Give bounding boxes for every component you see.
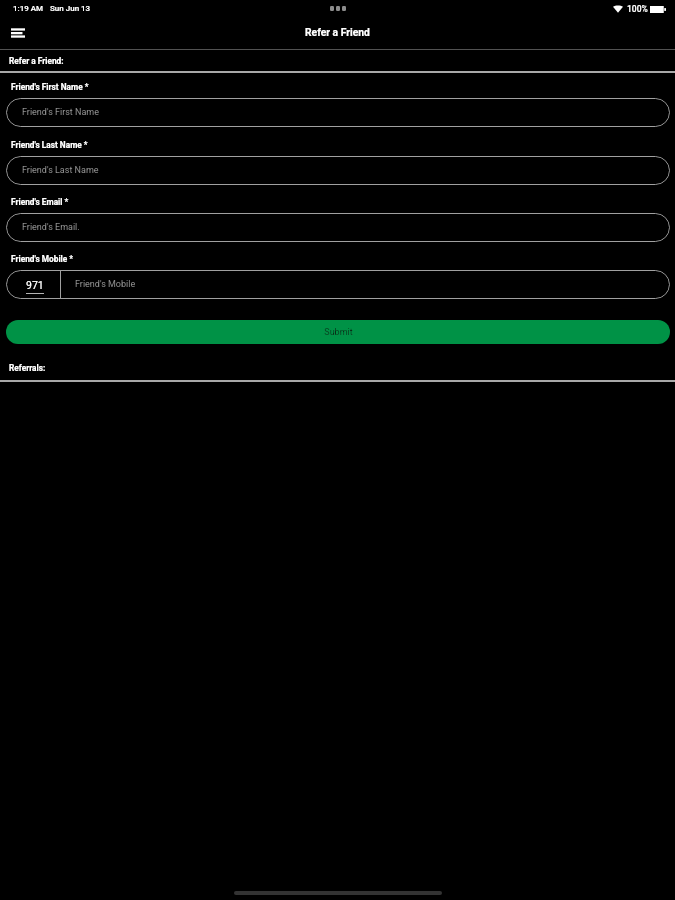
staticText: Friend's Last Name * (11, 140, 88, 150)
staticText: 1:19 AM (13, 4, 44, 13)
button[interactable]: Friend's Mobile (61, 270, 670, 299)
staticText: 100% (627, 4, 648, 14)
button[interactable]: 971 (6, 270, 60, 299)
staticText: Friend's First Name (22, 107, 100, 118)
staticText: Submit (324, 327, 353, 338)
button[interactable]: Friend's Last Name (6, 156, 670, 185)
staticText: Friend's Last Name (22, 165, 99, 176)
button[interactable]: Friend's Email. (6, 213, 670, 242)
staticText: Friend's Mobile * (11, 254, 74, 264)
button[interactable]: Open navigation menu (4, 18, 32, 46)
staticText: Friend's Mobile (75, 279, 136, 290)
staticText: Friend's Email * (11, 197, 69, 207)
staticText: Friend's Email. (22, 222, 80, 233)
staticText: Friend's First Name * (11, 82, 89, 92)
staticText: 971 (26, 279, 44, 291)
button[interactable]: Friend's First Name (6, 98, 670, 127)
staticText: Refer a Friend: (9, 56, 64, 66)
staticText: Referrals: (9, 363, 46, 373)
button[interactable]: Submit (6, 320, 670, 344)
staticText: Refer a Friend (305, 26, 370, 38)
staticText: Sun Jun 13 (50, 4, 91, 13)
